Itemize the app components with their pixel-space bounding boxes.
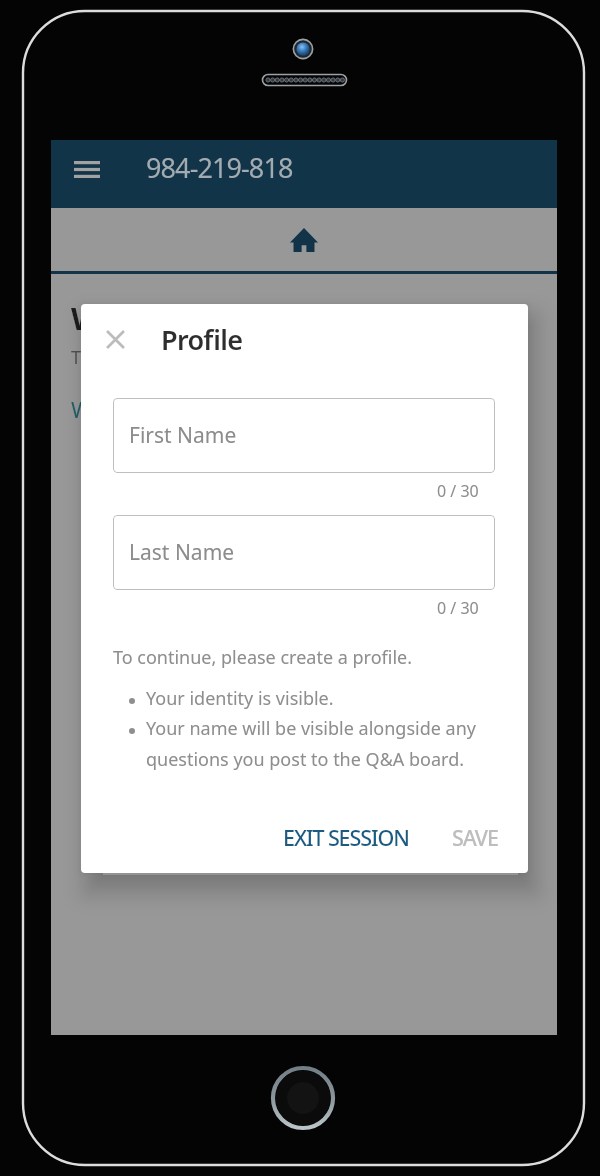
button[interactable]: SAVE <box>442 815 508 860</box>
button[interactable]: EXIT SESSION <box>273 815 419 860</box>
staticText: 984-219-818 <box>146 149 293 186</box>
staticText: Last Name <box>129 538 235 567</box>
staticText: This session has not started yet. <box>71 345 341 370</box>
button[interactable]: Open navigation menu <box>61 143 113 195</box>
staticText: What would you like to do? <box>71 394 349 424</box>
staticText: SAVE <box>452 823 498 852</box>
staticText: 0 / 30 <box>437 480 479 502</box>
staticText: Your name will be visible alongside any … <box>146 716 494 771</box>
button[interactable]: Home <box>51 208 557 271</box>
staticText: Your identity is visible. <box>146 686 334 711</box>
staticText: First Name <box>129 421 237 450</box>
button[interactable]: First Name <box>113 398 495 473</box>
staticText: EXIT SESSION <box>283 823 409 852</box>
button[interactable]: Close <box>93 317 137 361</box>
button[interactable]: Last Name <box>113 515 495 590</box>
staticText: 0 / 30 <box>437 597 479 619</box>
staticText: To continue, please create a profile. <box>113 645 412 670</box>
staticText: Welcome to the session <box>71 297 436 339</box>
staticText: Profile <box>161 321 243 358</box>
